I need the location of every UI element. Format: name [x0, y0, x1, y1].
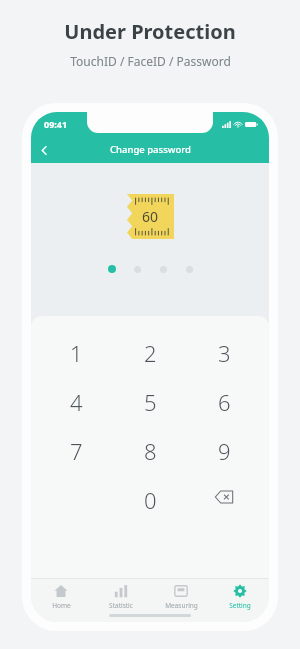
staticText: Measuring: [165, 601, 198, 610]
staticText: 4: [70, 387, 83, 411]
button[interactable]: 8: [119, 436, 181, 460]
staticText: 7: [70, 436, 83, 460]
staticText: 3: [218, 338, 231, 362]
staticText: Change password: [110, 143, 191, 156]
button[interactable]: Setting: [211, 584, 269, 610]
staticText: Home: [52, 601, 71, 610]
staticText: 1: [70, 338, 83, 362]
button[interactable]: Measuring: [151, 584, 211, 610]
button[interactable]: 6: [193, 387, 255, 411]
button[interactable]: 4: [45, 387, 107, 411]
staticText: 2: [144, 338, 157, 362]
staticText: 6: [218, 387, 231, 411]
staticText: Under Protection: [64, 18, 236, 45]
button[interactable]: 9: [193, 436, 255, 460]
button[interactable]: 5: [119, 387, 181, 411]
staticText: Setting: [229, 601, 251, 610]
button[interactable]: 2: [119, 338, 181, 362]
button[interactable]: Backspace: [193, 485, 255, 509]
staticText: 60: [142, 207, 159, 226]
button[interactable]: Back: [31, 137, 57, 163]
button[interactable]: 0: [119, 485, 181, 509]
button[interactable]: 3: [193, 338, 255, 362]
button[interactable]: Home: [31, 584, 91, 610]
staticText: 9: [218, 436, 231, 460]
button[interactable]: 1: [45, 338, 107, 362]
staticText: 5: [144, 387, 157, 411]
staticText: 09:41: [44, 118, 68, 130]
staticText: 0: [144, 485, 157, 509]
staticText: TouchID / FaceID / Password: [70, 53, 231, 69]
button[interactable]: Statistic: [91, 584, 151, 610]
staticText: 8: [144, 436, 157, 460]
button[interactable]: 7: [45, 436, 107, 460]
staticText: Statistic: [109, 601, 133, 610]
